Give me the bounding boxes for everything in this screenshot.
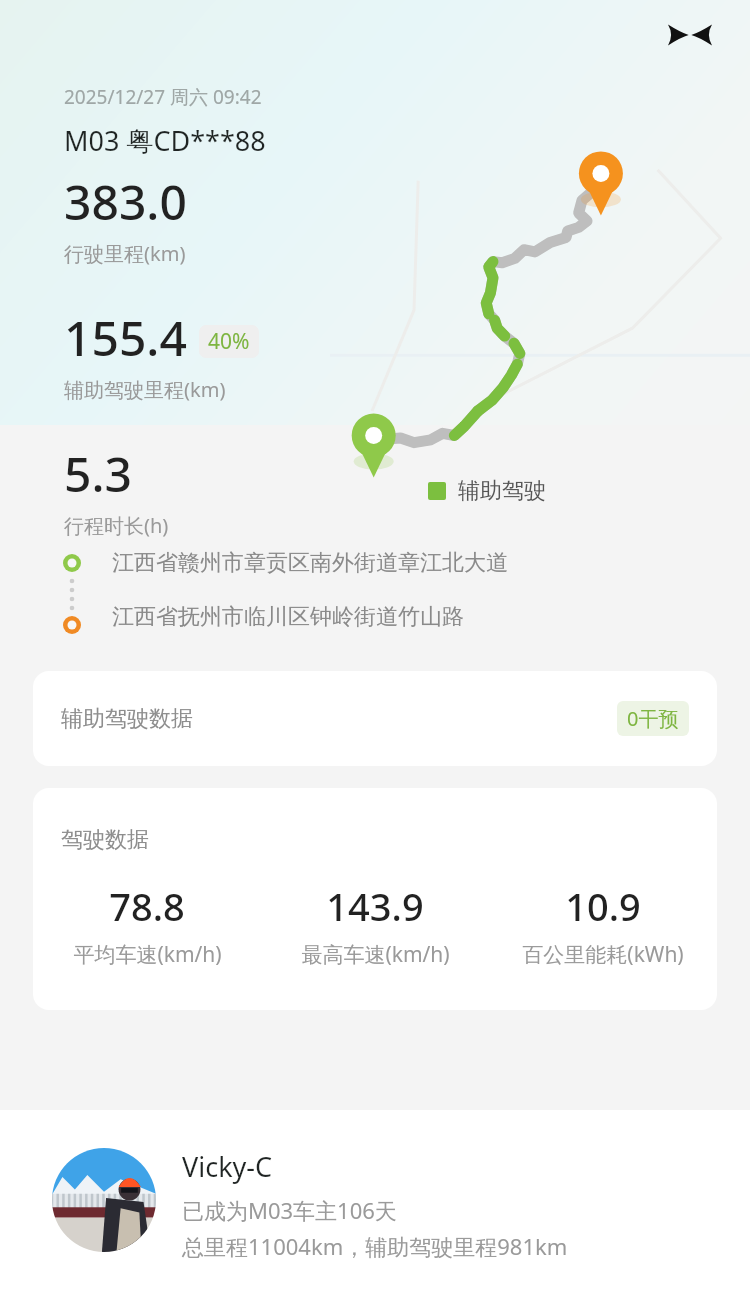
staticText: 江西省赣州市章贡区南外街道章江北大道 xyxy=(112,549,508,577)
staticText: 10.9 xyxy=(565,880,641,932)
staticText: 已成为M03车主106天 xyxy=(182,1195,397,1225)
button[interactable]: 辅助驾驶数据 xyxy=(33,671,717,766)
staticText: 155.4 xyxy=(64,305,187,370)
staticText: 百公里能耗(kWh) xyxy=(522,940,684,969)
button[interactable]: Brand logo xyxy=(666,11,714,59)
staticText: 行驶里程(km) xyxy=(64,240,186,267)
staticText: 辅助驾驶里程(km) xyxy=(64,376,226,403)
staticText: 辅助驾驶数据 xyxy=(61,705,193,733)
staticText: 5.3 xyxy=(64,441,132,506)
staticText: 最高车速(km/h) xyxy=(301,940,450,969)
staticText: 0干预 xyxy=(627,705,679,732)
staticText: 总里程11004km，辅助驾驶里程981km xyxy=(182,1231,568,1261)
staticText: 78.8 xyxy=(109,880,185,932)
staticText: Vicky-C xyxy=(182,1148,273,1185)
staticText: 383.0 xyxy=(64,169,187,234)
staticText: 143.9 xyxy=(326,880,424,932)
staticText: M03 粤CD***88 xyxy=(64,122,266,159)
staticText: 2025/12/27 周六 09:42 xyxy=(64,84,262,110)
button[interactable]: 驾驶数据 xyxy=(33,788,717,1010)
staticText: 辅助驾驶 xyxy=(458,477,546,505)
staticText: 江西省抚州市临川区钟岭街道竹山路 xyxy=(112,603,464,631)
staticText: 行程时长(h) xyxy=(64,512,169,539)
staticText: 平均车速(km/h) xyxy=(73,940,222,969)
staticText: 驾驶数据 xyxy=(61,826,149,854)
staticText: 40% xyxy=(208,327,250,356)
button[interactable]: Vicky-C xyxy=(0,1110,750,1300)
